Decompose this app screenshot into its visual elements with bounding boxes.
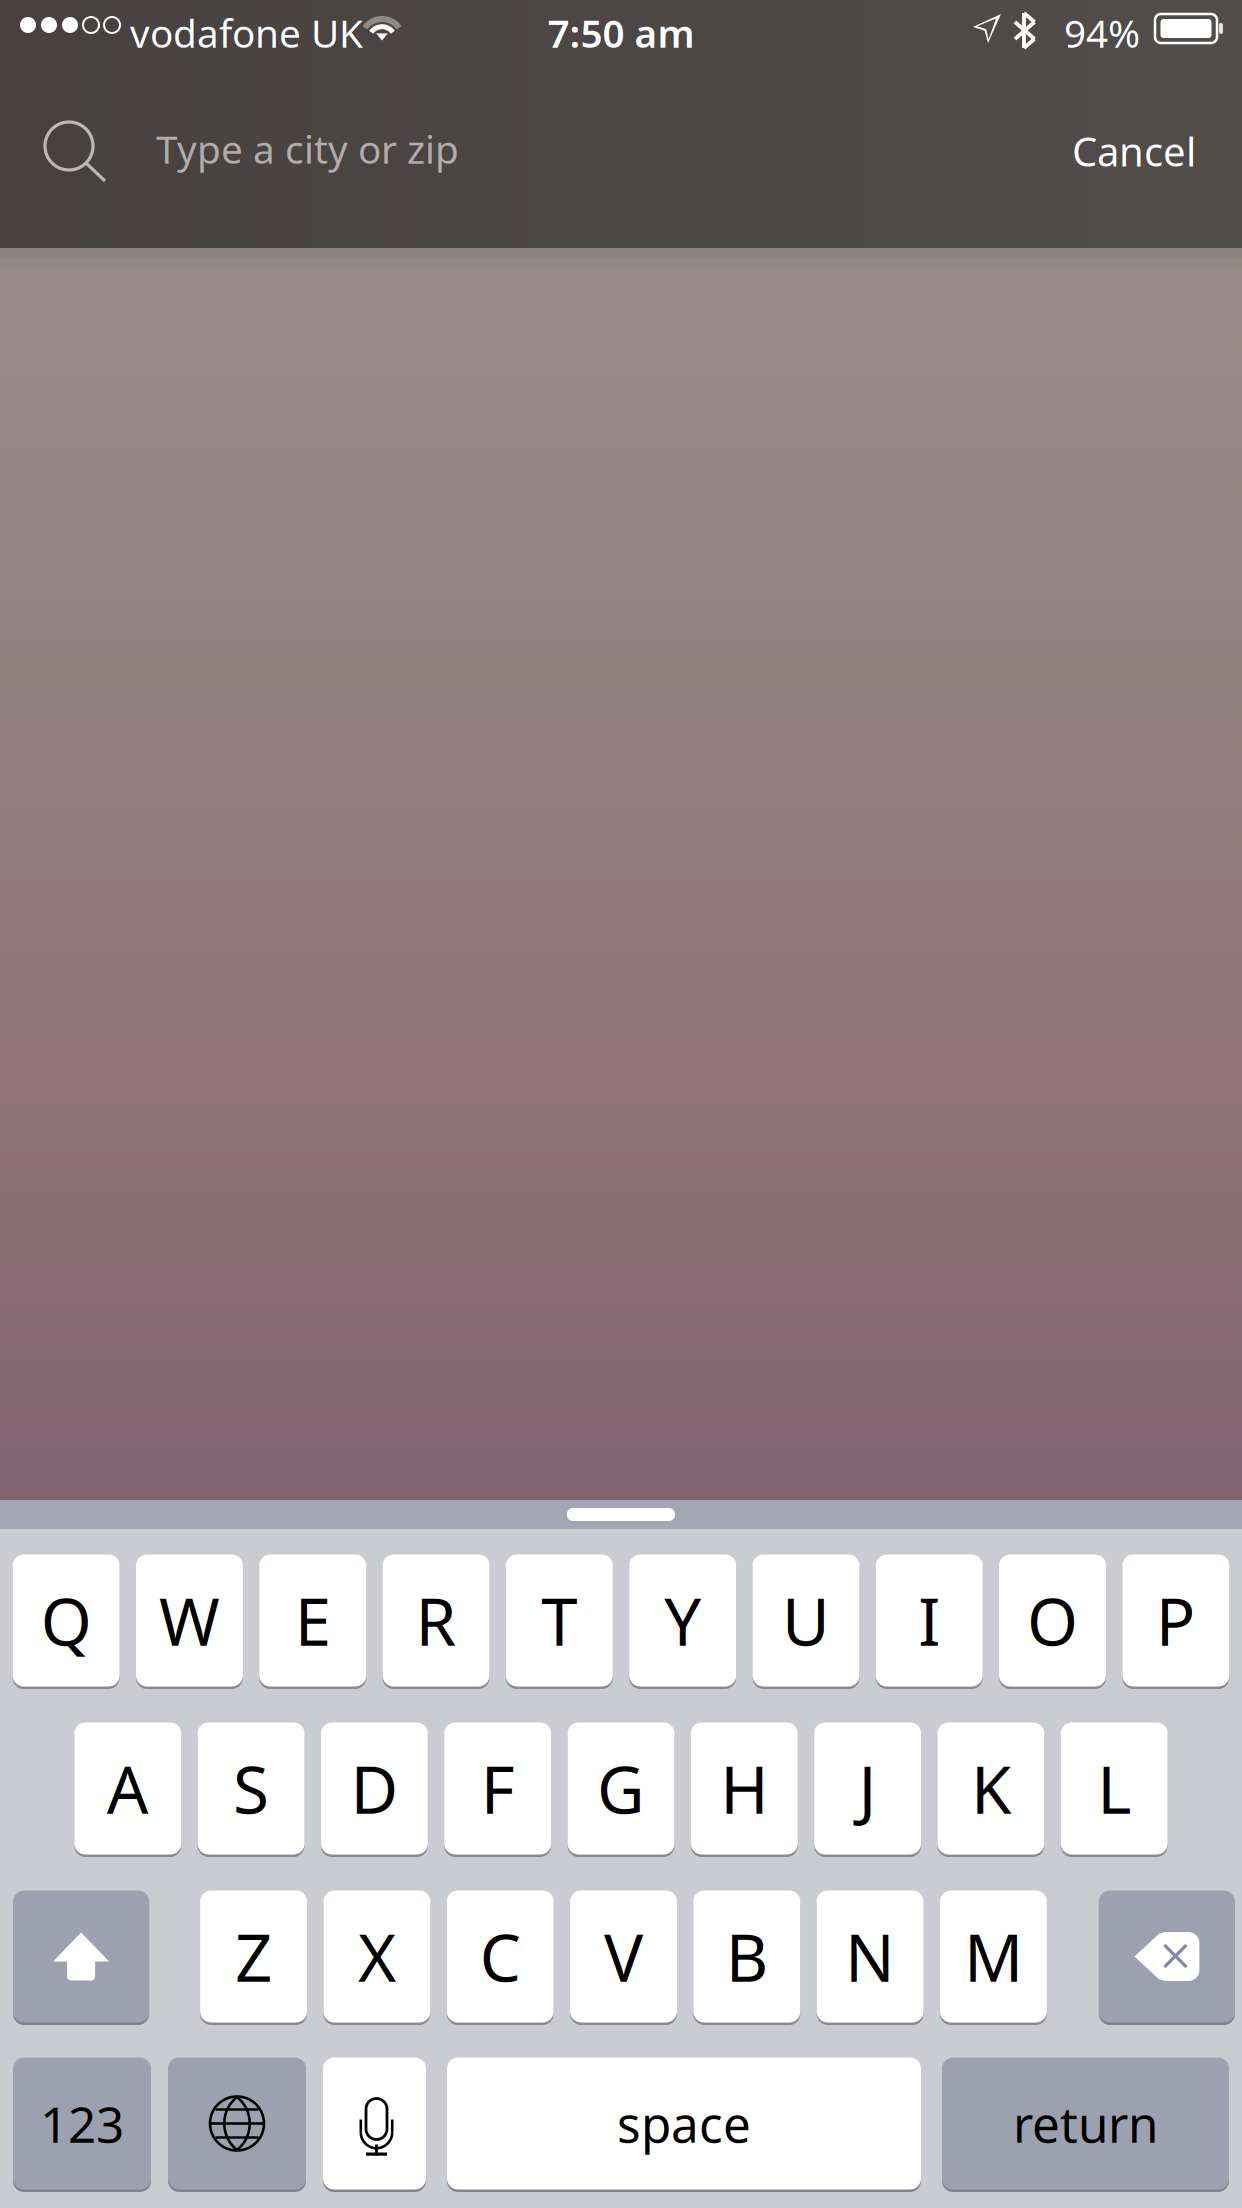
staticText: Y xyxy=(664,1577,701,1664)
staticText: M xyxy=(964,1913,1023,2000)
button[interactable]: C xyxy=(447,1889,554,2024)
staticText: R xyxy=(415,1577,456,1664)
staticText: Cancel xyxy=(1072,124,1196,177)
button[interactable]: Z xyxy=(200,1889,307,2024)
staticText: E xyxy=(295,1577,331,1664)
button[interactable]: space xyxy=(447,2056,921,2191)
button[interactable]: Q xyxy=(13,1553,120,1688)
staticText: Q xyxy=(41,1577,92,1664)
button[interactable]: P xyxy=(1122,1553,1229,1688)
button[interactable]: M xyxy=(940,1889,1047,2024)
staticText: S xyxy=(233,1745,269,1832)
staticText: A xyxy=(107,1745,149,1832)
staticText: N xyxy=(845,1913,895,2000)
staticText: C xyxy=(480,1913,521,2000)
staticText: F xyxy=(481,1745,515,1832)
button[interactable]: S xyxy=(198,1721,305,1856)
button[interactable]: V xyxy=(570,1889,677,2024)
staticText: G xyxy=(597,1745,645,1832)
button[interactable]: Cancel xyxy=(1048,99,1220,203)
staticText: W xyxy=(159,1577,220,1664)
button[interactable]: R xyxy=(382,1553,489,1688)
staticText: X xyxy=(358,1913,396,2000)
button[interactable]: Y xyxy=(629,1553,736,1688)
button[interactable]: L xyxy=(1061,1721,1168,1856)
button[interactable]: E xyxy=(259,1553,366,1688)
button[interactable]: I xyxy=(876,1553,983,1688)
staticText: O xyxy=(1027,1577,1078,1664)
staticText: D xyxy=(350,1745,398,1832)
staticText: return xyxy=(1013,2091,1158,2156)
staticText: T xyxy=(541,1577,577,1664)
staticText: I xyxy=(918,1577,940,1664)
staticText: space xyxy=(617,2091,751,2156)
button[interactable]: Next keyboard xyxy=(168,2056,306,2191)
button[interactable]: Shift xyxy=(13,1889,149,2024)
staticText: H xyxy=(720,1745,768,1832)
button[interactable]: B xyxy=(693,1889,800,2024)
staticText: Type a city or zip xyxy=(156,123,459,174)
staticText: L xyxy=(1097,1745,1131,1832)
staticText: 94% xyxy=(1064,7,1140,58)
staticText: P xyxy=(1156,1577,1196,1664)
button[interactable]: K xyxy=(937,1721,1044,1856)
staticText: 123 xyxy=(40,2091,124,2156)
staticText: 7:50 am xyxy=(547,7,694,58)
staticText: V xyxy=(604,1913,643,2000)
staticText: vodafone UK xyxy=(130,7,363,58)
staticText: B xyxy=(726,1913,768,2000)
staticText: J xyxy=(859,1745,877,1832)
button[interactable]: D xyxy=(321,1721,428,1856)
staticText: Z xyxy=(235,1913,272,2000)
button[interactable]: T xyxy=(506,1553,613,1688)
button[interactable]: Dictation xyxy=(323,2056,426,2191)
button[interactable]: return xyxy=(942,2056,1229,2191)
button[interactable]: O xyxy=(999,1553,1106,1688)
button[interactable]: W xyxy=(136,1553,243,1688)
button[interactable]: Delete xyxy=(1099,1889,1235,2024)
button[interactable]: H xyxy=(691,1721,798,1856)
button[interactable]: F xyxy=(444,1721,551,1856)
button[interactable]: U xyxy=(752,1553,859,1688)
button[interactable]: G xyxy=(567,1721,674,1856)
staticText: K xyxy=(971,1745,1011,1832)
button[interactable]: N xyxy=(817,1889,924,2024)
button[interactable]: X xyxy=(323,1889,430,2024)
button[interactable]: J xyxy=(814,1721,921,1856)
staticText: U xyxy=(782,1577,830,1664)
button[interactable]: A xyxy=(74,1721,181,1856)
button[interactable]: 123 xyxy=(13,2056,151,2191)
